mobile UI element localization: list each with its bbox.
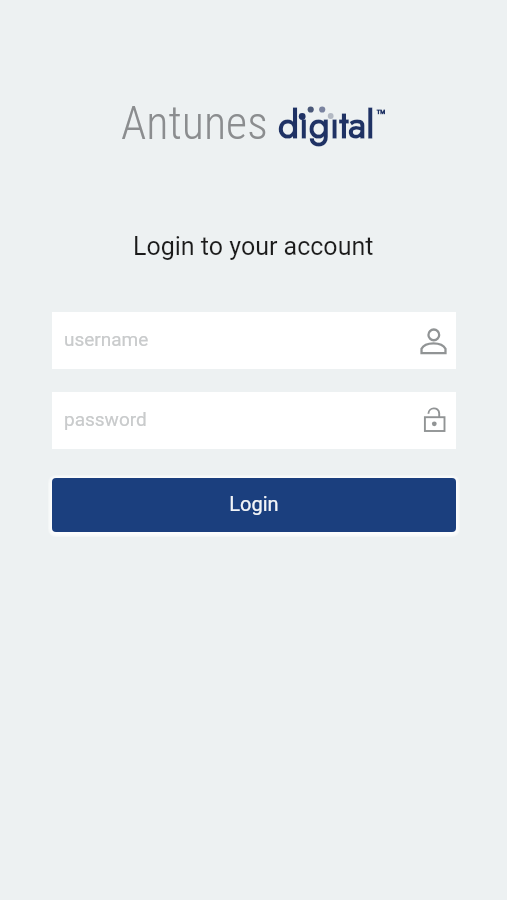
staticText: Antunes xyxy=(121,96,268,150)
staticText: Login to your account xyxy=(133,232,374,261)
button[interactable]: password xyxy=(52,392,456,449)
button[interactable]: username xyxy=(52,312,456,369)
staticText: Login xyxy=(229,492,279,515)
button[interactable]: Login xyxy=(52,478,456,532)
staticText: digital xyxy=(278,98,375,151)
staticText: username xyxy=(64,328,421,350)
staticText: password xyxy=(64,408,421,430)
other: Username xyxy=(421,328,446,353)
other: Password xyxy=(424,406,445,431)
staticText: ™ xyxy=(376,106,387,125)
